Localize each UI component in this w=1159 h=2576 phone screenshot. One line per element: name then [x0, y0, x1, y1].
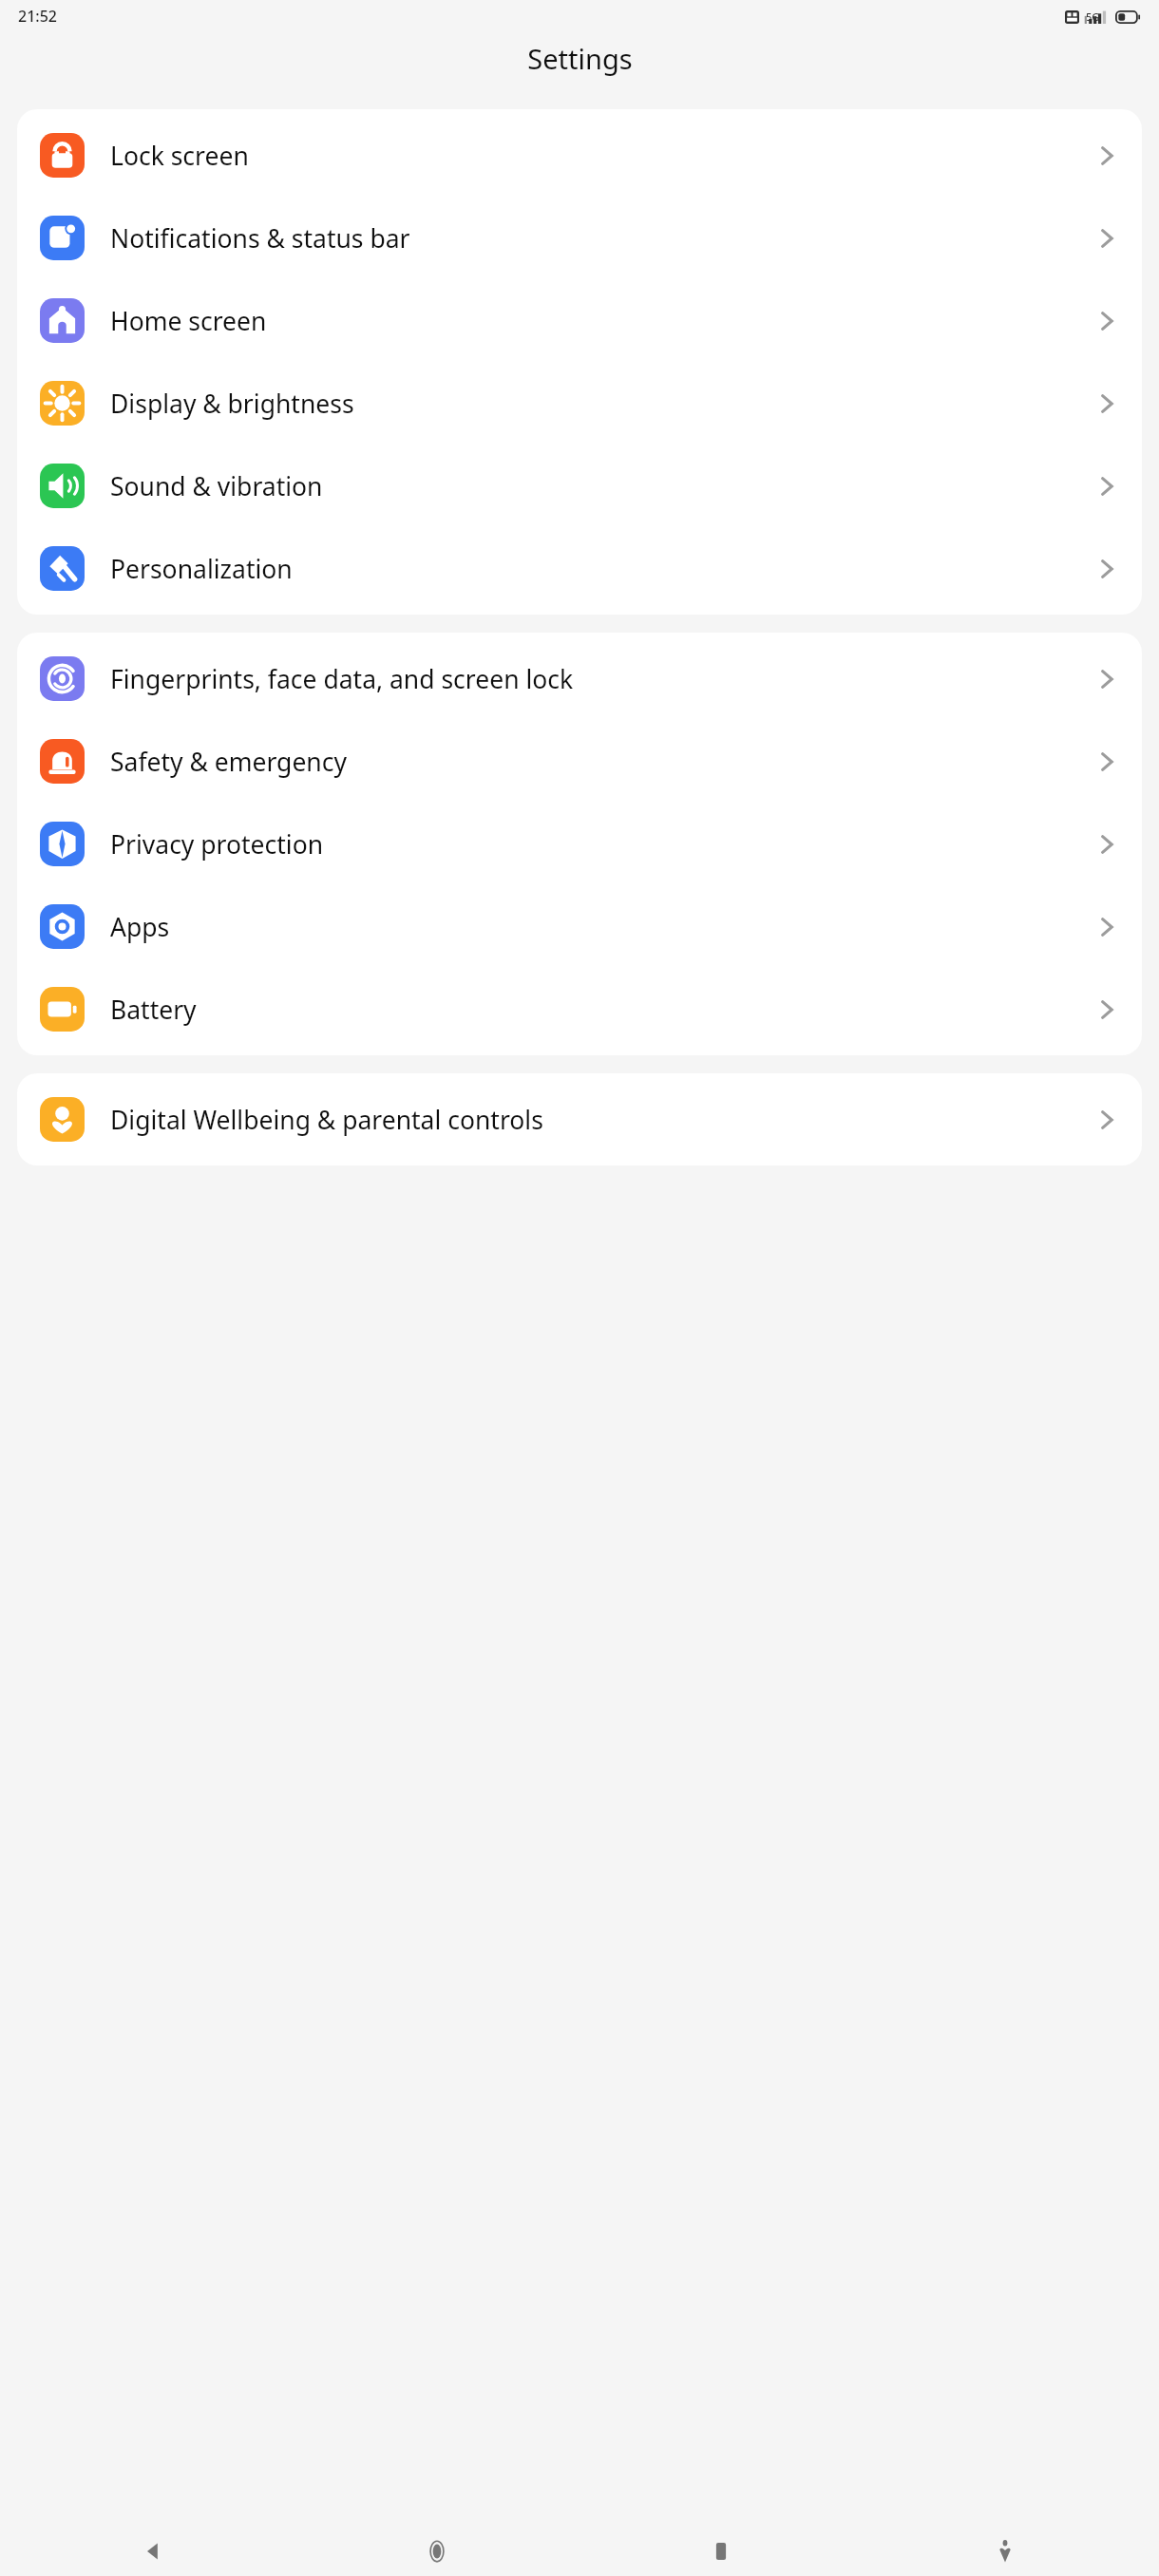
staticText: 21:52	[18, 6, 57, 27]
button[interactable]: Notifications & status bar	[17, 197, 1142, 279]
button[interactable]: Apps	[17, 885, 1142, 968]
staticText: Fingerprints, face data, and screen lock	[110, 662, 1083, 696]
staticText: Digital Wellbeing & parental controls	[110, 1103, 1083, 1137]
staticText: Display & brightness	[110, 387, 1083, 421]
staticText: Sound & vibration	[110, 469, 1083, 503]
button[interactable]: Personalization	[17, 527, 1142, 610]
staticText: Safety & emergency	[110, 745, 1083, 779]
button[interactable]: Recents	[694, 2526, 748, 2576]
button[interactable]: Home screen	[17, 279, 1142, 362]
button[interactable]: Digital Wellbeing & parental controls	[17, 1078, 1142, 1161]
button[interactable]: Back	[126, 2526, 180, 2576]
button[interactable]: Sound & vibration	[17, 445, 1142, 527]
staticText: Privacy protection	[110, 827, 1083, 862]
staticText: 5G	[1086, 9, 1100, 24]
button[interactable]: Privacy protection	[17, 803, 1142, 885]
staticText: Home screen	[110, 304, 1083, 338]
staticText: Personalization	[110, 552, 1083, 586]
button[interactable]: One-handed mode	[978, 2526, 1032, 2576]
button[interactable]: Fingerprints, face data, and screen lock	[17, 637, 1142, 720]
button[interactable]: Home	[410, 2526, 464, 2576]
button[interactable]: Display & brightness	[17, 362, 1142, 445]
button[interactable]: Battery	[17, 968, 1142, 1051]
staticText: Battery	[110, 993, 1083, 1027]
staticText: Settings	[527, 40, 633, 77]
staticText: Apps	[110, 910, 1083, 944]
button[interactable]: Safety & emergency	[17, 720, 1142, 803]
staticText: Lock screen	[110, 139, 1083, 173]
staticText: Notifications & status bar	[110, 221, 1083, 256]
button[interactable]: Lock screen	[17, 114, 1142, 197]
